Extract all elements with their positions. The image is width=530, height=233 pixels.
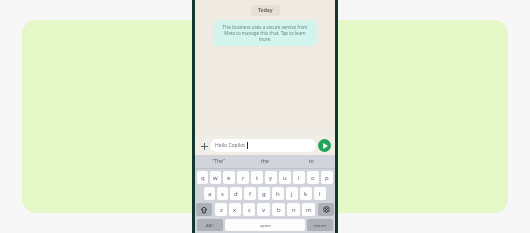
staticText: c: [248, 206, 251, 214]
staticText: return: [314, 223, 326, 228]
button[interactable]: w: [210, 171, 221, 184]
staticText: "The": [212, 158, 225, 165]
staticText: m: [306, 206, 312, 214]
button[interactable]: u: [279, 171, 291, 184]
staticText: o: [311, 174, 315, 182]
staticText: k: [304, 190, 308, 198]
button[interactable]: Backspace: [318, 203, 334, 216]
button[interactable]: Shift: [196, 203, 212, 216]
staticText: z: [220, 206, 223, 214]
button[interactable]: f: [244, 187, 256, 200]
button[interactable]: z: [215, 203, 227, 216]
button[interactable]: This business uses a secure service from…: [213, 20, 317, 46]
staticText: t: [256, 174, 259, 182]
staticText: f: [249, 190, 252, 198]
staticText: l: [319, 190, 321, 198]
button[interactable]: j: [286, 187, 298, 200]
staticText: g: [262, 190, 266, 198]
staticText: to: [309, 158, 314, 165]
staticText: v: [262, 206, 266, 214]
button[interactable]: to: [288, 155, 335, 168]
staticText: x: [233, 206, 237, 214]
button[interactable]: q: [197, 171, 208, 184]
button[interactable]: m: [302, 203, 315, 216]
button[interactable]: s: [217, 187, 228, 200]
staticText: p: [325, 174, 329, 182]
staticText: e: [227, 174, 231, 182]
staticText: Today: [258, 7, 273, 14]
button[interactable]: n: [287, 203, 300, 216]
button[interactable]: the: [241, 155, 288, 168]
button[interactable]: l: [314, 187, 326, 200]
button[interactable]: a: [204, 187, 215, 200]
staticText: h: [276, 190, 280, 198]
button[interactable]: t: [251, 171, 263, 184]
staticText: d: [234, 190, 238, 198]
staticText: b: [277, 206, 281, 214]
button[interactable]: p: [321, 171, 333, 184]
staticText: a: [208, 190, 212, 198]
button[interactable]: h: [272, 187, 284, 200]
button[interactable]: o: [307, 171, 319, 184]
button[interactable]: c: [243, 203, 255, 216]
button[interactable]: i: [293, 171, 305, 184]
staticText: y: [269, 174, 273, 182]
button[interactable]: k: [300, 187, 312, 200]
button[interactable]: v: [257, 203, 270, 216]
staticText: s: [221, 190, 224, 198]
button[interactable]: space: [225, 219, 305, 231]
button[interactable]: "The": [195, 155, 241, 168]
button[interactable]: Attach: [198, 140, 210, 152]
button[interactable]: r: [237, 171, 249, 184]
button[interactable]: y: [265, 171, 277, 184]
staticText: u: [283, 174, 287, 182]
staticText: j: [291, 190, 293, 198]
staticText: This business uses a secure service from…: [219, 24, 311, 42]
button[interactable]: b: [272, 203, 285, 216]
staticText: ABC: [206, 223, 214, 228]
button[interactable]: return: [307, 219, 333, 231]
staticText: q: [201, 174, 205, 182]
staticText: space: [260, 223, 271, 228]
staticText: the: [261, 158, 269, 165]
button[interactable]: x: [229, 203, 241, 216]
staticText: i: [298, 174, 300, 182]
button[interactable]: Hello Copilot: [210, 139, 316, 152]
button[interactable]: d: [230, 187, 242, 200]
button[interactable]: e: [223, 171, 235, 184]
staticText: r: [242, 174, 245, 182]
button[interactable]: ABC: [197, 219, 223, 231]
button[interactable]: g: [258, 187, 270, 200]
staticText: Hello Copilot: [215, 142, 246, 149]
staticText: n: [292, 206, 296, 214]
staticText: w: [213, 174, 218, 182]
button[interactable]: Send: [318, 139, 331, 152]
